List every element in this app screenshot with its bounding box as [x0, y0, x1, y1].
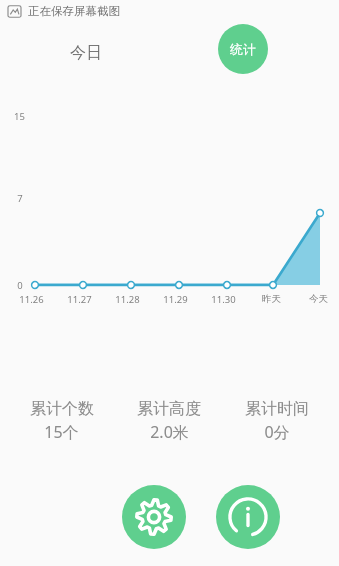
staticText: 15	[14, 110, 25, 123]
staticText: 今天	[309, 293, 328, 305]
staticText: 0	[17, 279, 23, 292]
staticText: 7	[17, 192, 23, 205]
button[interactable]: 累计高度	[115, 399, 223, 443]
staticText: 累计高度	[137, 399, 201, 419]
staticText: 2.0米	[150, 421, 189, 443]
staticText: 0分	[264, 421, 290, 443]
staticText: 11.27	[67, 293, 92, 306]
staticText: 11.30	[211, 293, 236, 306]
button[interactable]: Info	[216, 485, 280, 549]
staticText: 累计时间	[245, 399, 309, 419]
staticText: 今日	[70, 43, 102, 63]
button[interactable]: 统计	[218, 24, 268, 74]
button[interactable]: 累计时间	[223, 399, 331, 443]
staticText: 11.26	[19, 293, 44, 306]
staticText: 11.29	[163, 293, 188, 306]
button[interactable]: Settings	[122, 485, 186, 549]
staticText: 统计	[230, 41, 256, 57]
staticText: 15个	[44, 421, 79, 443]
staticText: 昨天	[262, 293, 281, 305]
button[interactable]: 累计个数	[8, 399, 115, 443]
staticText: 正在保存屏幕截图	[28, 4, 120, 18]
button[interactable]: 今日	[62, 38, 110, 68]
staticText: 累计个数	[30, 399, 94, 419]
staticText: 11.28	[115, 293, 140, 306]
